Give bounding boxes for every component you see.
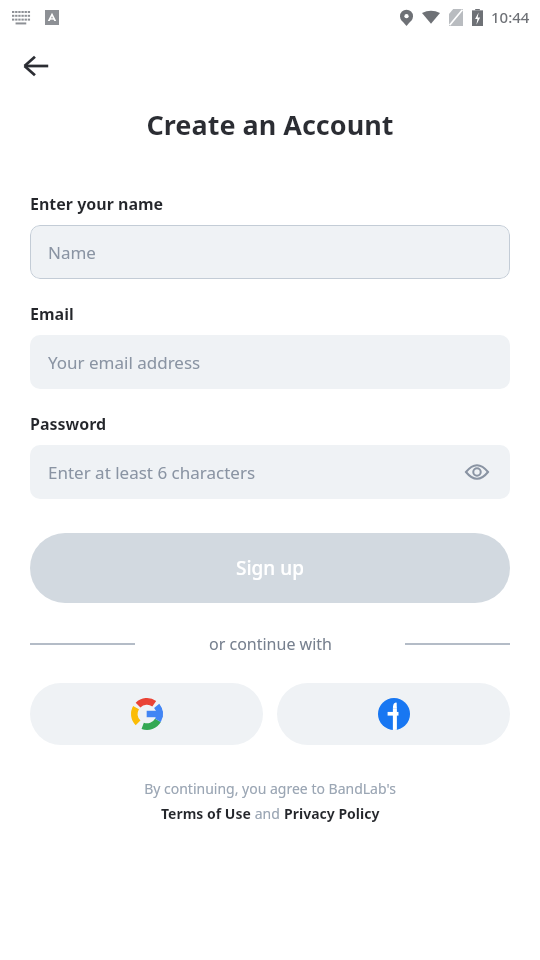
staticText: Privacy Policy [284,804,380,823]
button[interactable]: Continue with Google [30,683,263,745]
button[interactable]: Continue with Facebook [277,683,510,745]
staticText: Name [48,241,492,264]
staticText: Create an Account [0,106,540,143]
staticText: Enter your name [30,193,164,215]
button[interactable]: Terms of Use [161,804,251,823]
staticText: Sign up [236,555,304,581]
button[interactable]: Enter at least 6 characters [30,445,510,499]
button[interactable]: Your email address [30,335,510,389]
staticText: 10:44 [491,7,530,27]
staticText: Enter at least 6 characters [48,461,462,484]
button[interactable]: Show password [462,457,492,487]
staticText: Terms of Use [161,804,251,823]
staticText: Password [30,413,107,435]
button[interactable]: Name [30,225,510,279]
button[interactable]: Back [12,42,60,90]
staticText: and [251,804,284,823]
button[interactable]: Privacy Policy [284,804,380,823]
staticText: Email [30,303,74,325]
staticText: Your email address [48,351,492,374]
staticText: or continue with [209,633,332,655]
button[interactable]: Sign up [30,533,510,603]
staticText: By continuing, you agree to BandLab's [30,779,510,798]
